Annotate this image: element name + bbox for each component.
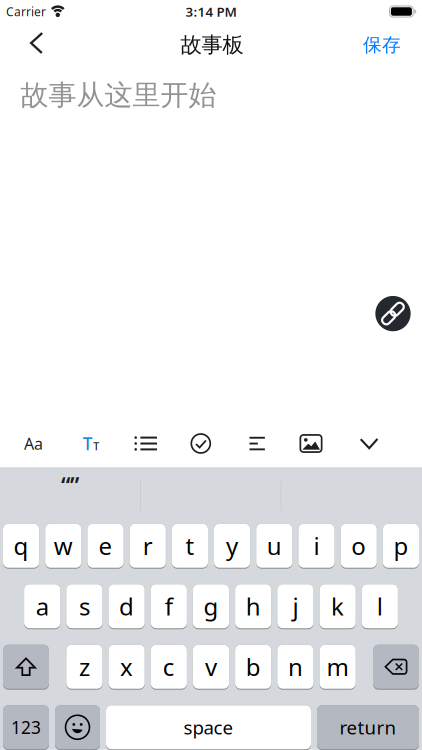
- staticText: v: [205, 651, 217, 683]
- button[interactable]: r: [130, 524, 166, 569]
- button[interactable]: e: [87, 524, 124, 569]
- staticText: l: [377, 590, 383, 622]
- staticText: t: [185, 530, 194, 562]
- staticText: f: [165, 590, 173, 622]
- button[interactable]: Checklist: [178, 420, 224, 466]
- staticText: Aa: [24, 433, 43, 454]
- button[interactable]: Bulleted list: [123, 420, 169, 466]
- staticText: m: [327, 651, 349, 683]
- staticText: r: [143, 530, 153, 562]
- staticText: T: [83, 432, 93, 455]
- button[interactable]: l: [362, 584, 398, 629]
- staticText: o: [351, 530, 366, 562]
- staticText: q: [14, 530, 29, 562]
- button[interactable]: 123: [3, 705, 49, 750]
- staticText: s: [79, 590, 90, 622]
- button[interactable]: q: [3, 524, 39, 569]
- button[interactable]: a: [24, 584, 60, 629]
- staticText: Carrier: [6, 3, 46, 19]
- button[interactable]: o: [341, 524, 377, 569]
- button[interactable]: p: [383, 524, 419, 569]
- staticText: z: [79, 651, 90, 683]
- staticText: j: [292, 590, 298, 622]
- button[interactable]: Text size: [68, 420, 114, 466]
- button[interactable]: Emoji: [55, 705, 100, 750]
- button[interactable]: Alignment: [234, 420, 280, 466]
- staticText: a: [36, 590, 49, 622]
- button[interactable]: t: [172, 524, 208, 569]
- button[interactable]: k: [319, 584, 356, 629]
- staticText: u: [267, 530, 282, 562]
- staticText: T: [93, 439, 99, 453]
- button[interactable]: c: [151, 645, 187, 690]
- button[interactable]: Delete: [373, 645, 419, 690]
- staticText: n: [288, 651, 303, 683]
- button[interactable]: Insert photo: [288, 420, 334, 466]
- button[interactable]: y: [214, 524, 250, 569]
- staticText: w: [54, 530, 73, 562]
- staticText: g: [203, 590, 218, 622]
- button[interactable]: Insert link: [375, 296, 411, 331]
- button[interactable]: i: [298, 524, 335, 569]
- staticText: y: [226, 530, 238, 562]
- button[interactable]: z: [66, 645, 102, 690]
- staticText: “”: [61, 470, 79, 500]
- button[interactable]: return: [317, 705, 419, 750]
- staticText: space: [183, 715, 233, 740]
- button[interactable]: x: [108, 645, 145, 690]
- staticText: e: [98, 530, 112, 562]
- button[interactable]: Shift: [3, 645, 49, 690]
- button[interactable]: Text style: [10, 420, 56, 466]
- button[interactable]: Quote suggestion: [0, 473, 140, 517]
- staticText: i: [313, 530, 319, 562]
- staticText: 123: [11, 716, 41, 739]
- button[interactable]: s: [66, 584, 102, 629]
- button[interactable]: g: [193, 584, 229, 629]
- button[interactable]: b: [235, 645, 271, 690]
- button[interactable]: j: [277, 584, 313, 629]
- button[interactable]: Dismiss keyboard: [346, 420, 392, 466]
- staticText: 故事板: [180, 32, 243, 58]
- button[interactable]: u: [256, 524, 292, 569]
- staticText: p: [393, 530, 408, 562]
- button[interactable]: h: [235, 584, 271, 629]
- staticText: 3:14 PM: [185, 3, 236, 20]
- button[interactable]: Back: [0, 24, 55, 66]
- staticText: k: [331, 590, 344, 622]
- button[interactable]: f: [151, 584, 187, 629]
- button[interactable]: n: [277, 645, 313, 690]
- staticText: 故事从这里开始: [20, 78, 216, 112]
- button[interactable]: v: [193, 645, 229, 690]
- staticText: d: [119, 590, 134, 622]
- staticText: x: [120, 651, 133, 683]
- staticText: b: [246, 651, 261, 683]
- button[interactable]: d: [108, 584, 145, 629]
- staticText: c: [163, 651, 175, 683]
- staticText: h: [246, 590, 261, 622]
- staticText: return: [339, 715, 396, 740]
- staticText: 保存: [363, 33, 401, 56]
- button[interactable]: space: [106, 705, 311, 750]
- button[interactable]: 保存: [351, 24, 422, 65]
- button[interactable]: m: [319, 645, 356, 690]
- button[interactable]: w: [45, 524, 81, 569]
